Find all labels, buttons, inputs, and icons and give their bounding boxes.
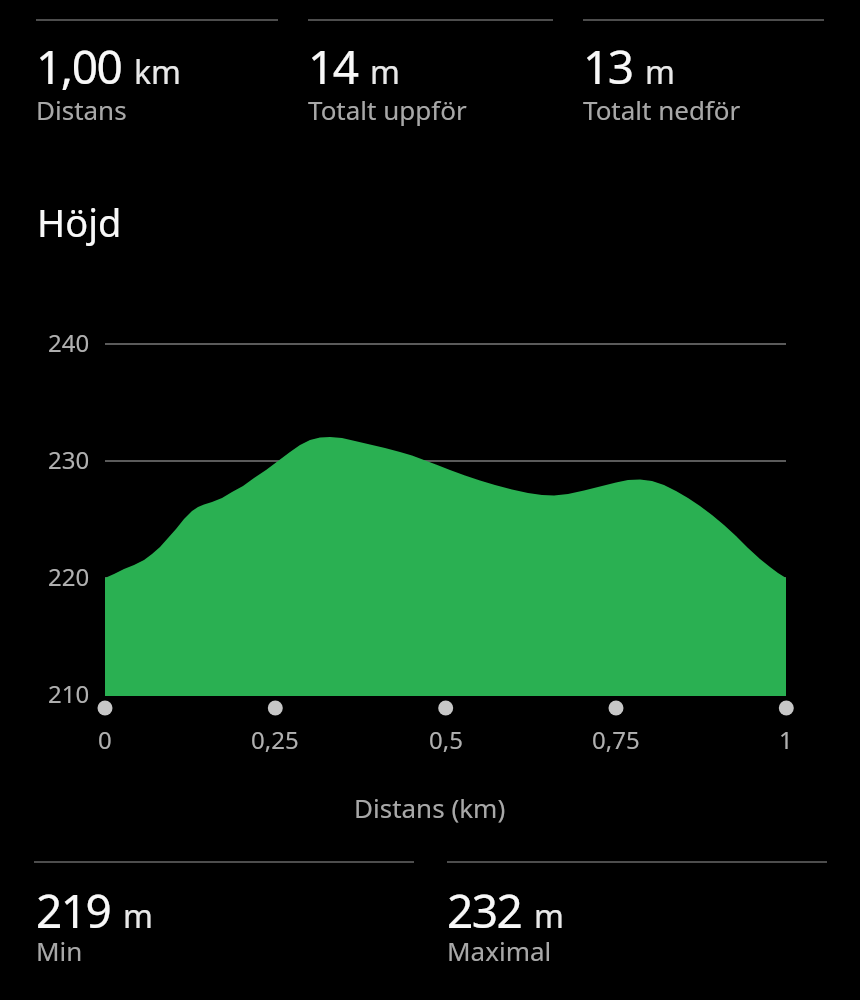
button[interactable]: 14 bbox=[308, 19, 553, 131]
staticText: 13 bbox=[583, 35, 633, 98]
staticText: m bbox=[645, 50, 675, 94]
staticText: 0 bbox=[98, 723, 112, 756]
button[interactable]: 1,00 bbox=[36, 19, 278, 131]
staticText: Distans bbox=[36, 92, 127, 127]
button[interactable]: 13 bbox=[583, 19, 824, 131]
staticText: 240 bbox=[48, 326, 90, 359]
staticText: 210 bbox=[48, 677, 90, 710]
staticText: 230 bbox=[48, 443, 90, 476]
staticText: 219 bbox=[36, 879, 111, 942]
staticText: 0,25 bbox=[251, 723, 299, 756]
staticText: Höjd bbox=[37, 196, 122, 248]
staticText: Totalt nedför bbox=[583, 92, 741, 127]
staticText: km bbox=[134, 50, 182, 94]
staticText: 1 bbox=[779, 723, 793, 756]
staticText: Totalt uppför bbox=[308, 92, 467, 127]
button[interactable]: 232 bbox=[447, 863, 825, 975]
staticText: 220 bbox=[48, 560, 90, 593]
staticText: Distans (km) bbox=[354, 790, 506, 825]
staticText: 0,5 bbox=[429, 723, 463, 756]
staticText: m bbox=[123, 894, 153, 938]
staticText: 1,00 bbox=[36, 35, 122, 98]
staticText: m bbox=[370, 50, 400, 94]
staticText: Maximal bbox=[447, 933, 552, 968]
staticText: m bbox=[534, 894, 564, 938]
staticText: 14 bbox=[308, 35, 358, 98]
button[interactable]: 219 bbox=[36, 863, 414, 975]
staticText: Min bbox=[36, 933, 83, 968]
staticText: 232 bbox=[447, 879, 522, 942]
staticText: 0,75 bbox=[592, 723, 640, 756]
